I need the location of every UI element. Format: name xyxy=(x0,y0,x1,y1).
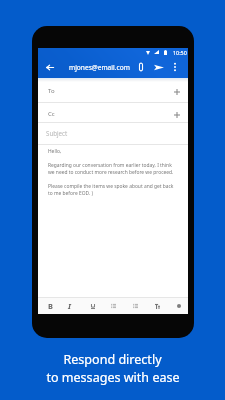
staticText: we need to conduct more research before … xyxy=(48,169,174,176)
button[interactable]: To xyxy=(38,78,188,102)
button[interactable]: Text colour xyxy=(171,298,187,314)
button[interactable]: Cc xyxy=(38,102,188,123)
button[interactable]: Send xyxy=(151,59,167,75)
button[interactable]: Underline xyxy=(85,298,101,314)
staticText: to messages with ease xyxy=(46,369,180,386)
staticText: I xyxy=(68,301,71,311)
button[interactable]: Bold xyxy=(42,298,58,314)
staticText: to me before EOD. ) xyxy=(48,190,93,197)
staticText: B xyxy=(48,301,53,311)
button[interactable]: Subject xyxy=(38,122,188,143)
staticText: Respond directly xyxy=(63,351,162,368)
button[interactable]: Back xyxy=(42,59,58,75)
staticText: mjones@email.com xyxy=(69,63,130,72)
button[interactable]: Bulleted list xyxy=(105,298,121,314)
staticText: Subject xyxy=(46,129,68,137)
staticText: 10:50 xyxy=(173,49,187,56)
button[interactable]: Numbered list xyxy=(127,298,143,314)
staticText: Hello, xyxy=(48,148,62,155)
button[interactable]: More options xyxy=(168,60,182,74)
staticText: To xyxy=(48,87,55,95)
button[interactable]: Text size xyxy=(149,298,165,314)
staticText: Regarding our conversation from earlier … xyxy=(48,162,172,169)
button[interactable]: Italic xyxy=(61,298,77,314)
staticText: Cc xyxy=(48,110,55,118)
button[interactable]: Attach file xyxy=(133,59,149,75)
staticText: Please compile the items we spoke about … xyxy=(48,183,174,190)
